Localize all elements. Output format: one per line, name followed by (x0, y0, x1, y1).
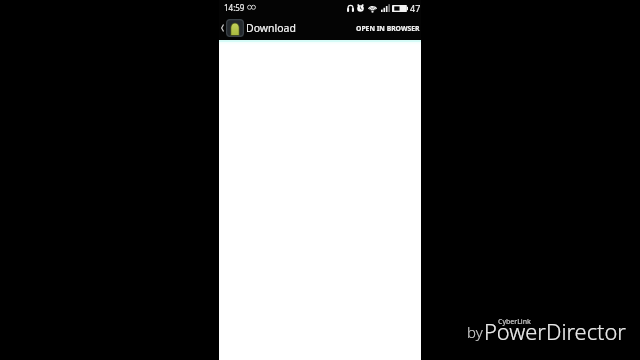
button[interactable]: OPEN IN BROWSER (353, 16, 421, 40)
staticText: OPEN IN BROWSER (356, 24, 420, 33)
button[interactable]: Navigate up (219, 16, 299, 40)
staticText: CyberLink (498, 317, 531, 326)
staticText: PowerDirector (484, 317, 626, 347)
staticText: by (467, 322, 483, 342)
staticText: 14:59 (224, 2, 245, 13)
staticText: Download (246, 21, 296, 35)
staticText: 47 (410, 2, 421, 14)
